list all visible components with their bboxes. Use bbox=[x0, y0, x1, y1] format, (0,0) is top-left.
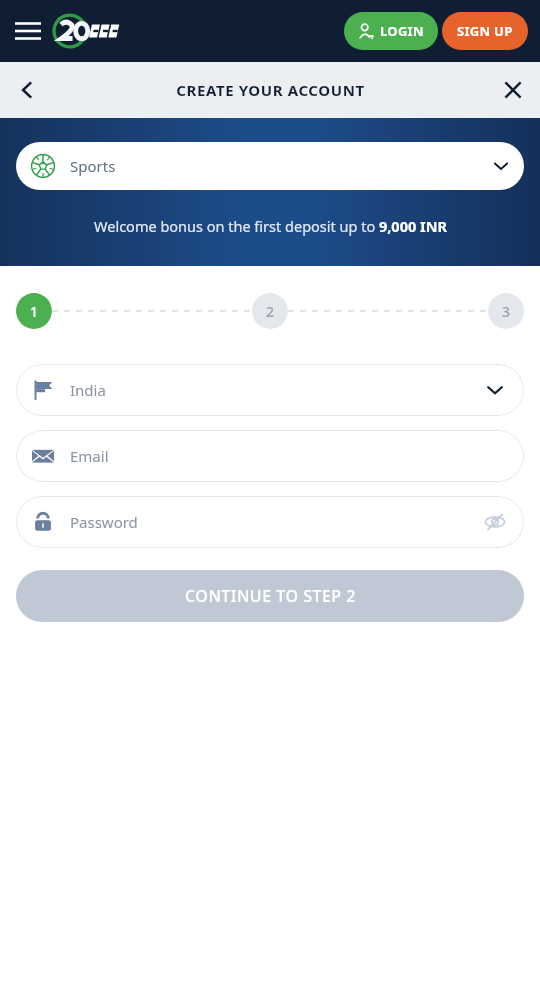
button[interactable]: CONTINUE TO STEP 2 bbox=[16, 570, 524, 622]
button[interactable]: 20bet home bbox=[52, 9, 160, 53]
staticText: Welcome bonus on the first deposit up to… bbox=[94, 216, 447, 236]
button[interactable]: Back bbox=[6, 69, 48, 111]
staticText: SIGN UP bbox=[457, 22, 513, 40]
staticText: Password bbox=[70, 512, 138, 532]
button[interactable]: Email bbox=[16, 430, 524, 482]
staticText: 2 bbox=[266, 302, 275, 321]
button[interactable]: Sports bbox=[16, 142, 524, 190]
button[interactable]: LOGIN bbox=[344, 12, 438, 50]
staticText: India bbox=[70, 380, 106, 400]
button[interactable]: 2 bbox=[252, 293, 288, 329]
button[interactable]: India bbox=[16, 364, 524, 416]
staticText: Email bbox=[70, 446, 109, 466]
staticText: LOGIN bbox=[380, 22, 424, 40]
button[interactable]: Close bbox=[492, 69, 534, 111]
staticText: CREATE YOUR ACCOUNT bbox=[176, 80, 365, 100]
button[interactable]: 3 bbox=[488, 293, 524, 329]
staticText: CONTINUE TO STEP 2 bbox=[185, 585, 356, 607]
staticText: 1 bbox=[30, 302, 39, 321]
button[interactable]: Menu bbox=[8, 11, 48, 51]
button[interactable]: 1 bbox=[16, 293, 52, 329]
button[interactable]: Show password bbox=[482, 509, 508, 535]
button[interactable]: Password bbox=[16, 496, 524, 548]
button[interactable]: Select country bbox=[482, 377, 508, 403]
button[interactable]: SIGN UP bbox=[442, 12, 528, 50]
staticText: Sports bbox=[70, 156, 116, 176]
staticText: 3 bbox=[502, 302, 511, 321]
